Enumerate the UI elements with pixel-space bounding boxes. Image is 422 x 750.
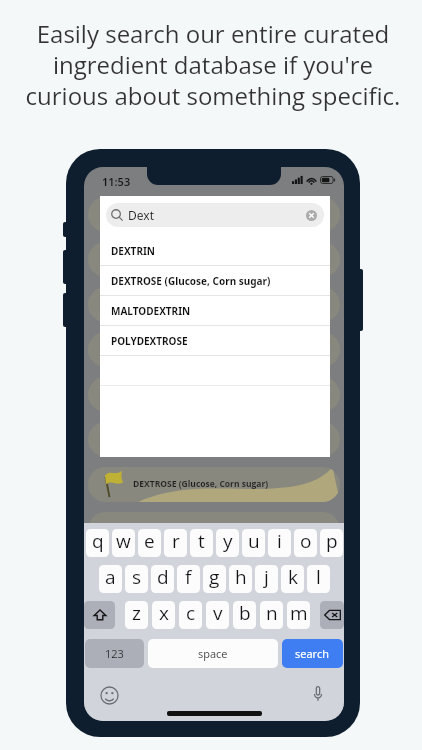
button[interactable]: search bbox=[282, 639, 343, 668]
button[interactable]: d bbox=[151, 565, 174, 593]
button[interactable]: Dictate bbox=[311, 684, 325, 703]
button[interactable]: POLYDEXTROSE bbox=[100, 326, 330, 356]
staticText: q bbox=[92, 529, 104, 554]
button[interactable]: 123 bbox=[85, 639, 144, 668]
staticText: Easily search our entire curated ingredi… bbox=[8, 17, 418, 112]
button[interactable]: o bbox=[294, 529, 317, 557]
button[interactable] bbox=[88, 242, 340, 277]
button[interactable]: MALTODEXTRIN bbox=[100, 296, 330, 326]
staticText: t bbox=[198, 529, 205, 554]
button[interactable]: Emoji keyboard bbox=[100, 686, 119, 705]
staticText: m bbox=[290, 601, 308, 626]
staticText: i bbox=[277, 529, 282, 554]
staticText: Dext bbox=[128, 207, 154, 223]
staticText: 11:53 bbox=[102, 174, 131, 189]
button[interactable]: a bbox=[99, 565, 122, 593]
button[interactable]: Dext bbox=[106, 203, 324, 227]
staticText: search bbox=[295, 646, 330, 661]
button[interactable]: s bbox=[125, 565, 148, 593]
staticText: r bbox=[172, 529, 180, 554]
button[interactable]: n bbox=[260, 601, 283, 629]
staticText: v bbox=[213, 601, 223, 626]
staticText: DEXTROSE (Glucose, Corn sugar) bbox=[111, 274, 271, 288]
button[interactable]: Shift bbox=[84, 601, 115, 629]
staticText: g bbox=[209, 565, 220, 590]
staticText: a bbox=[105, 565, 116, 590]
button[interactable]: Backspace bbox=[320, 601, 344, 629]
staticText: e bbox=[144, 529, 155, 554]
button[interactable]: Clear text bbox=[302, 206, 320, 224]
staticText: y bbox=[223, 529, 233, 554]
staticText: j bbox=[264, 565, 269, 590]
button[interactable]: z bbox=[125, 601, 148, 629]
staticText: k bbox=[288, 565, 298, 590]
button[interactable]: e bbox=[138, 529, 161, 557]
staticText: 123 bbox=[105, 646, 124, 661]
staticText: MALTODEXTRIN bbox=[111, 304, 191, 318]
button[interactable]: h bbox=[229, 565, 252, 593]
button[interactable] bbox=[88, 512, 340, 547]
button[interactable]: g bbox=[203, 565, 226, 593]
staticText: l bbox=[316, 565, 321, 590]
staticText: f bbox=[185, 565, 192, 590]
button[interactable]: c bbox=[179, 601, 202, 629]
staticText: o bbox=[300, 529, 312, 554]
button[interactable]: b bbox=[233, 601, 256, 629]
button[interactable]: p bbox=[320, 529, 343, 557]
button[interactable]: t bbox=[190, 529, 213, 557]
staticText: h bbox=[235, 565, 247, 590]
staticText: b bbox=[239, 601, 251, 626]
button[interactable]: k bbox=[281, 565, 304, 593]
staticText: w bbox=[116, 529, 131, 554]
button[interactable]: i bbox=[268, 529, 291, 557]
button[interactable]: u bbox=[242, 529, 265, 557]
button[interactable]: j bbox=[255, 565, 278, 593]
staticText: DEXTRIN bbox=[111, 244, 155, 258]
button[interactable]: DEXTROSE (Glucose, Corn sugar) bbox=[100, 266, 330, 296]
staticText: POLYDEXTROSE bbox=[111, 334, 188, 348]
button[interactable]: w bbox=[112, 529, 135, 557]
staticText: space bbox=[198, 646, 228, 661]
button[interactable]: r bbox=[164, 529, 187, 557]
button[interactable]: DEXTROSE (Glucose, Corn sugar) bbox=[88, 467, 340, 502]
button[interactable]: DEXTRIN bbox=[100, 236, 330, 266]
staticText: p bbox=[326, 529, 338, 554]
staticText: DEXTROSE (Glucose, Corn sugar) bbox=[133, 478, 269, 490]
button[interactable] bbox=[88, 422, 340, 457]
staticText: x bbox=[159, 601, 169, 626]
staticText: s bbox=[132, 565, 142, 590]
button[interactable]: q bbox=[86, 529, 109, 557]
button[interactable]: y bbox=[216, 529, 239, 557]
staticText: z bbox=[132, 601, 141, 626]
button[interactable]: v bbox=[206, 601, 229, 629]
button[interactable] bbox=[88, 287, 340, 322]
button[interactable] bbox=[88, 377, 340, 412]
staticText: u bbox=[248, 529, 260, 554]
button[interactable]: f bbox=[177, 565, 200, 593]
staticText: c bbox=[186, 601, 196, 626]
button[interactable]: m bbox=[287, 601, 310, 629]
button[interactable] bbox=[88, 197, 340, 232]
button[interactable]: x bbox=[152, 601, 175, 629]
button[interactable]: space bbox=[148, 639, 278, 668]
staticText: d bbox=[157, 565, 169, 590]
button[interactable]: l bbox=[307, 565, 330, 593]
button[interactable] bbox=[88, 332, 340, 367]
staticText: n bbox=[266, 601, 278, 626]
